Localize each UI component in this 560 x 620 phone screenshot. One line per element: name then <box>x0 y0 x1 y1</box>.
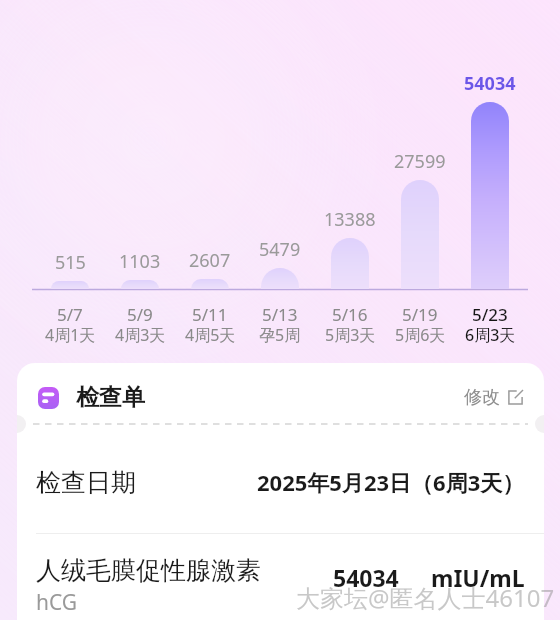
staticText: 4周3天 <box>115 324 166 346</box>
staticText: 5479 <box>259 237 301 262</box>
staticText: 5/13 <box>262 303 298 326</box>
staticText: 5周3天 <box>325 324 376 346</box>
staticText: 4周5天 <box>185 324 236 346</box>
staticText: 1103 <box>119 249 161 274</box>
staticText: 4周1天 <box>45 324 96 346</box>
staticText: 2607 <box>189 248 231 273</box>
staticText: 5周6天 <box>395 324 446 346</box>
staticText: 检查日期 <box>36 467 136 498</box>
staticText: 修改 <box>464 386 500 409</box>
staticText: 2025年5月23日（6周3天） <box>257 467 525 497</box>
staticText: 人绒毛膜促性腺激素 <box>36 555 261 586</box>
staticText: 515 <box>55 250 86 275</box>
staticText: 检查单 <box>76 383 145 412</box>
staticText: 5/7 <box>57 303 83 326</box>
staticText: 54034 <box>464 71 516 96</box>
staticText: 6周3天 <box>465 324 516 346</box>
button[interactable]: 检查日期 <box>36 458 525 506</box>
staticText: 5/23 <box>472 303 508 326</box>
staticText: 27599 <box>394 149 446 174</box>
staticText: 大家坛@匿名人士46107 <box>296 581 555 614</box>
button[interactable]: 人绒毛膜促性腺激素 <box>36 548 525 620</box>
button[interactable]: 修改 <box>464 380 523 415</box>
other: Edit <box>508 390 523 405</box>
staticText: 孕5周 <box>259 324 301 346</box>
staticText: 54034 <box>333 562 399 593</box>
staticText: 5/9 <box>127 303 153 326</box>
staticText: 5/19 <box>402 303 438 326</box>
staticText: 5/11 <box>192 303 228 326</box>
staticText: 5/16 <box>332 303 368 326</box>
staticText: hCG <box>36 588 78 617</box>
staticText: mIU/mL <box>431 562 525 593</box>
staticText: 13388 <box>324 207 376 232</box>
